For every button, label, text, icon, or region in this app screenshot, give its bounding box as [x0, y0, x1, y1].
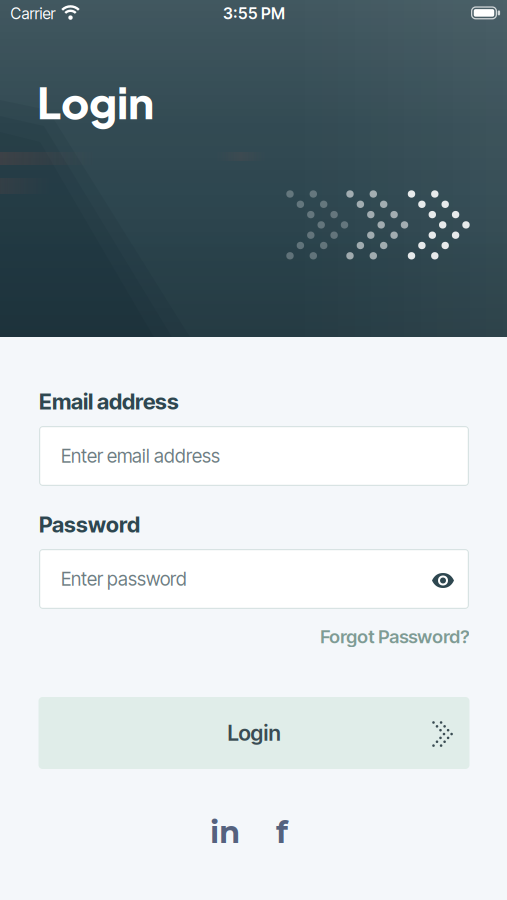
button[interactable]: Sign in with LinkedIn — [210, 813, 240, 851]
button[interactable]: Enter email address — [39, 426, 469, 486]
button[interactable]: Enter password — [39, 549, 469, 609]
button[interactable]: Show password — [432, 573, 454, 588]
staticText: f — [276, 813, 288, 851]
staticText: Enter password — [61, 568, 187, 590]
staticText: Password — [39, 511, 140, 538]
staticText: Forgot Password? — [320, 625, 469, 648]
button[interactable]: Login — [38, 697, 469, 769]
staticText: Login — [37, 74, 154, 129]
button[interactable]: Sign in with Facebook — [276, 813, 288, 851]
staticText: Login — [227, 720, 280, 746]
staticText: Carrier — [10, 4, 55, 23]
staticText: in — [210, 813, 240, 851]
staticText: 3:55 PM — [223, 4, 285, 23]
button[interactable]: Forgot Password? — [320, 625, 469, 648]
staticText: Email address — [39, 388, 179, 415]
staticText: Enter email address — [61, 445, 220, 467]
